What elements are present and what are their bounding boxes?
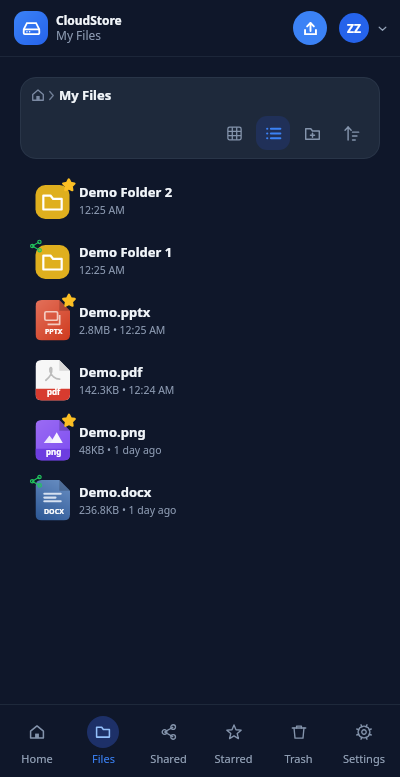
staticText: Demo.png: [79, 423, 146, 441]
button[interactable]: Files: [70, 716, 136, 766]
staticText: My Files: [56, 27, 102, 43]
staticText: Demo.pptx: [79, 303, 151, 321]
button[interactable]: Demo Folder 1: [0, 232, 400, 292]
button[interactable]: Demo Folder 2: [0, 172, 400, 232]
button[interactable]: Shared: [136, 716, 201, 766]
button[interactable]: DOCX: [0, 472, 400, 532]
staticText: Starred: [214, 751, 253, 766]
staticText: CloudStore: [56, 12, 122, 28]
staticText: Shared: [150, 751, 187, 766]
staticText: 12:25 AM: [79, 203, 125, 217]
staticText: Demo.docx: [79, 483, 152, 501]
button[interactable]: Account menu: [374, 20, 390, 36]
staticText: Demo Folder 2: [79, 183, 173, 201]
button[interactable]: PPTX: [0, 292, 400, 352]
staticText: Demo Folder 1: [79, 243, 173, 261]
staticText: My Files: [59, 86, 112, 104]
button[interactable]: CloudStore: [14, 11, 48, 45]
button[interactable]: Home: [4, 716, 70, 766]
staticText: 142.3KB • 12:24 AM: [79, 383, 175, 397]
staticText: Settings: [343, 751, 385, 766]
staticText: 48KB • 1 day ago: [79, 443, 162, 457]
staticText: Files: [92, 751, 115, 766]
button[interactable]: Sort: [334, 116, 368, 150]
button[interactable]: List view: [256, 116, 290, 150]
staticText: ZZ: [347, 20, 361, 36]
staticText: 2.8MB • 12:25 AM: [79, 323, 166, 337]
button[interactable]: New folder: [295, 116, 329, 150]
button[interactable]: Account ZZ: [339, 13, 369, 43]
staticText: 12:25 AM: [79, 263, 125, 277]
staticText: PPTX: [45, 327, 63, 337]
button[interactable]: png: [0, 412, 400, 472]
staticText: pdf: [47, 386, 61, 397]
button[interactable]: Settings: [331, 716, 396, 766]
button[interactable]: Grid view: [217, 116, 251, 150]
button[interactable]: pdf: [0, 352, 400, 412]
staticText: Demo.pdf: [79, 363, 143, 381]
button[interactable]: Trash: [266, 716, 331, 766]
button[interactable]: Upload: [293, 11, 327, 45]
staticText: DOCX: [44, 507, 64, 517]
staticText: 236.8KB • 1 day ago: [79, 503, 177, 517]
button[interactable]: Starred: [201, 716, 266, 766]
staticText: png: [46, 446, 62, 457]
staticText: Home: [21, 751, 53, 766]
staticText: Trash: [284, 751, 313, 766]
